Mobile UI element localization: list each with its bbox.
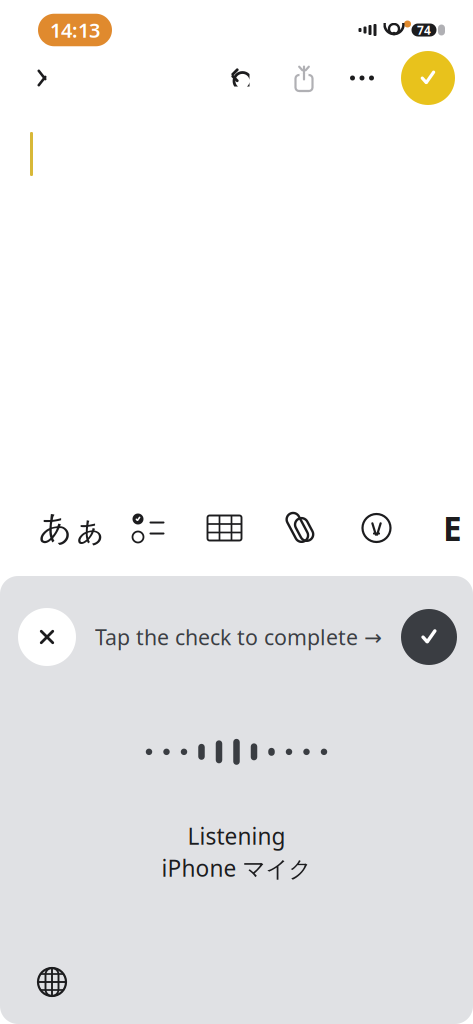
button[interactable]: Complete dictation xyxy=(401,609,457,665)
button[interactable]: Switch keyboard language xyxy=(24,954,80,1010)
button[interactable]: Attach xyxy=(262,500,338,556)
button[interactable]: More formatting xyxy=(414,500,473,556)
staticText: 74 xyxy=(417,22,431,38)
button[interactable]: Done xyxy=(401,51,455,105)
button[interactable]: Markup xyxy=(338,500,414,556)
staticText: 14:13 xyxy=(50,17,100,43)
button[interactable]: Undo xyxy=(215,52,267,104)
button[interactable]: Share xyxy=(275,52,333,104)
button[interactable]: More xyxy=(333,52,391,104)
button[interactable]: Back xyxy=(16,52,68,104)
button[interactable]: Dismiss dictation xyxy=(18,608,76,666)
staticText: Tap the check to complete → xyxy=(95,623,382,651)
staticText: あぁ xyxy=(38,507,106,548)
button[interactable]: Table xyxy=(186,500,262,556)
button[interactable]: Text format xyxy=(34,500,110,556)
button[interactable]: Checklist xyxy=(110,500,186,556)
staticText: E xyxy=(443,506,462,550)
staticText: Listening xyxy=(187,821,285,851)
staticText: iPhone マイク xyxy=(161,853,311,883)
